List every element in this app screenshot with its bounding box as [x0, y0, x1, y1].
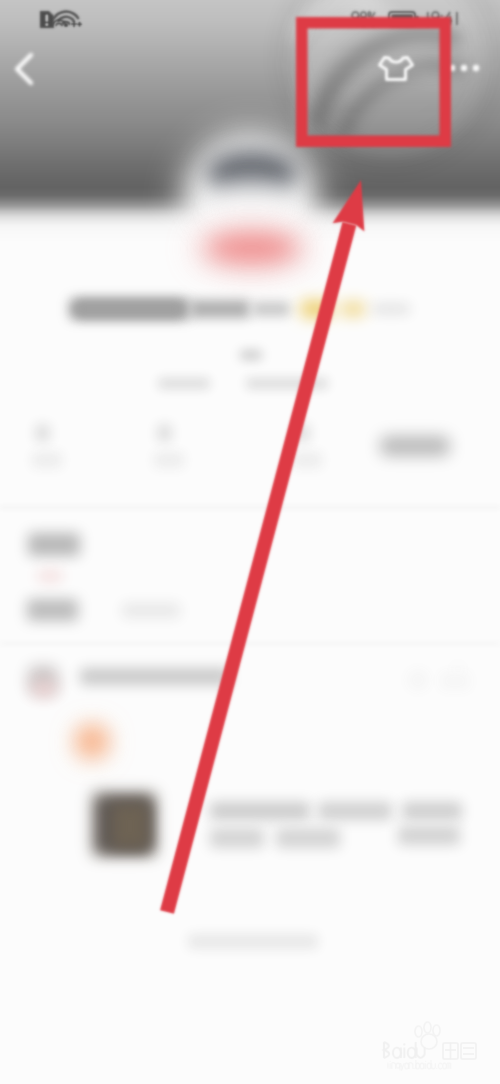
button[interactable]: Post author — [0, 650, 500, 712]
button[interactable]: Linked article — [80, 784, 480, 864]
button[interactable]: Clothing shop — [370, 40, 424, 100]
button[interactable]: Album tab — [16, 592, 96, 630]
button[interactable]: Following — [266, 414, 366, 476]
button[interactable]: Edit profile — [374, 430, 456, 462]
button[interactable]: Followers — [130, 414, 230, 476]
button[interactable]: Back — [0, 40, 56, 100]
button[interactable]: Dynamic tab — [16, 524, 96, 588]
button[interactable]: Profile photo — [188, 138, 314, 264]
button[interactable]: Posts — [14, 414, 110, 476]
button[interactable]: More options — [440, 44, 490, 94]
button[interactable]: User name — [64, 292, 420, 326]
button[interactable]: Reaction — [68, 718, 120, 766]
button[interactable]: Album count — [110, 592, 196, 630]
button[interactable]: Load more — [176, 926, 330, 958]
